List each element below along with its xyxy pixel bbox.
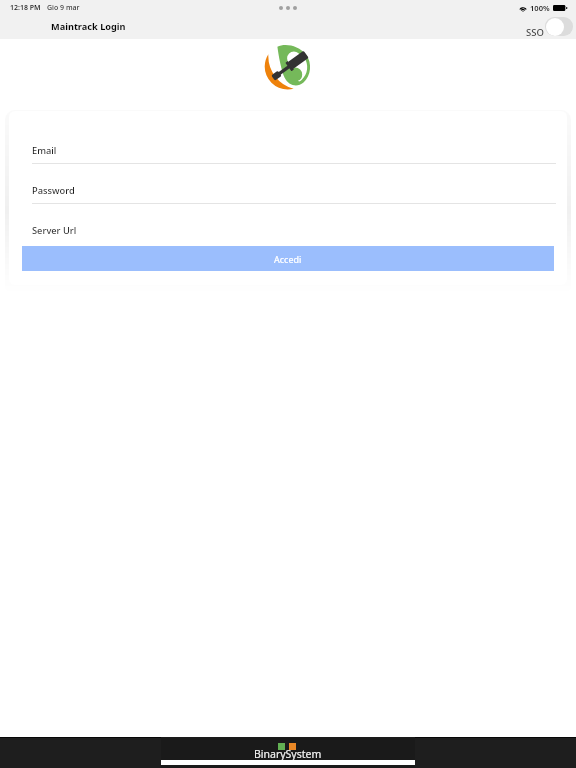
staticText: Gio 9 mar — [47, 3, 80, 13]
staticText: Password — [32, 184, 75, 197]
staticText: Server Url — [32, 224, 77, 237]
staticText: 12:18 PM — [10, 3, 41, 13]
staticText: BinarySystem — [254, 747, 322, 761]
staticText: Maintrack Login — [51, 20, 126, 33]
staticText: 100% — [530, 3, 550, 13]
button[interactable]: Accedi — [22, 246, 554, 271]
button[interactable]: SSO — [526, 17, 573, 36]
staticText: Accedi — [274, 253, 302, 265]
staticText: SSO — [526, 26, 544, 39]
staticText: Email — [32, 144, 57, 157]
